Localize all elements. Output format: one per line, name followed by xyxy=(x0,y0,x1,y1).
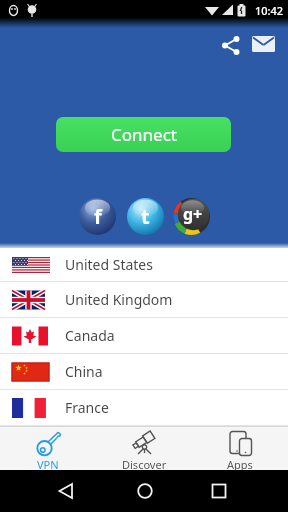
staticText: Apps xyxy=(227,457,253,470)
button[interactable]: China xyxy=(0,354,288,390)
button[interactable]: f xyxy=(79,198,116,235)
button[interactable]: Canada xyxy=(0,318,288,354)
staticText: 10:42 xyxy=(255,3,284,18)
button[interactable]: VPN xyxy=(0,427,96,470)
staticText: f xyxy=(94,203,102,230)
button[interactable]: g+ xyxy=(173,198,210,235)
staticText: United States xyxy=(65,255,153,274)
button[interactable]: Apps xyxy=(192,427,288,470)
button[interactable]: France xyxy=(0,390,288,426)
staticText: Connect xyxy=(111,123,177,146)
button[interactable] xyxy=(218,32,244,58)
staticText: France xyxy=(65,398,109,417)
button[interactable]: United Kingdom xyxy=(0,282,288,318)
button[interactable]: United States xyxy=(0,248,288,282)
staticText: United Kingdom xyxy=(65,290,173,309)
staticText: VPN xyxy=(37,457,59,470)
staticText: Canada xyxy=(65,326,115,345)
staticText: Discover xyxy=(122,457,167,470)
button[interactable] xyxy=(250,30,278,58)
button[interactable]: Discover xyxy=(96,427,192,470)
button[interactable]: t xyxy=(127,198,164,235)
staticText: g+ xyxy=(183,203,203,225)
button[interactable]: Connect xyxy=(56,117,231,152)
staticText: t xyxy=(141,203,150,230)
staticText: China xyxy=(65,362,103,381)
